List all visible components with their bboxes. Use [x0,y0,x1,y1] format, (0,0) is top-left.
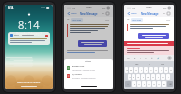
staticText: 10:32 [86,6,92,9]
button[interactable]: e [134,67,138,73]
staticText: 82% [102,7,106,9]
button[interactable]: h [151,74,155,80]
staticText: Spreadsheet · modified 2h ago [72,69,95,71]
button[interactable]: y [149,67,153,73]
staticText: Attach [85,60,92,63]
staticText: v [148,83,150,86]
button[interactable]: Format Aa [67,71,70,76]
button[interactable]: Format U [145,56,147,61]
button[interactable]: k [161,74,165,80]
button[interactable]: j [156,74,160,80]
staticText: k [162,76,164,79]
button[interactable]: w [129,67,133,73]
button[interactable]: Format I [80,71,81,76]
button[interactable]: p [169,67,173,73]
button[interactable]: Format ≡ [151,56,153,60]
button[interactable]: m [162,81,166,87]
staticText: ≡ [151,57,153,59]
button[interactable]: Back [127,11,138,16]
button[interactable]: c [142,81,146,87]
staticText: New Message [80,12,98,16]
button[interactable]: Camera [168,57,171,59]
button[interactable]: q [125,67,128,73]
button[interactable]: f [141,74,145,80]
button[interactable] [138,33,169,39]
staticText: z [134,83,135,86]
button[interactable]: MAIL [8,32,50,45]
button[interactable]: z [132,81,136,87]
button[interactable]: o [164,67,168,73]
button[interactable] [124,41,174,46]
button[interactable]: Format B [134,56,136,61]
staticText: y [150,69,152,72]
button[interactable]: We [160,63,165,66]
button[interactable]: v [147,81,151,87]
staticText: e [135,69,137,72]
staticText: Aa [67,72,70,75]
button[interactable]: r [79,77,83,83]
staticText: B [134,57,136,60]
button[interactable]: Back [67,11,78,16]
staticText: MAIL [14,34,20,37]
staticText: Inbox [71,12,77,15]
staticText: p [170,69,172,72]
button[interactable]: t [84,77,88,83]
staticText: Nora Chen [132,19,142,21]
staticText: m [163,83,165,86]
button[interactable]: r [139,67,143,73]
button[interactable]: I [148,63,151,66]
button[interactable]: s [132,74,135,80]
button[interactable]: u [154,67,158,73]
button[interactable]: ⌫ [167,81,173,87]
button[interactable]: Format 🔗 [157,56,160,60]
button[interactable]: q [64,77,68,83]
staticText: To: [127,18,130,21]
staticText: q [126,69,128,72]
button[interactable]: t [144,67,148,73]
button[interactable]: n [157,81,161,87]
staticText: s [133,76,134,79]
button[interactable]: w [69,77,73,83]
button[interactable]: a [128,74,131,80]
staticText: b [153,83,155,86]
button[interactable]: Format Aa [127,56,130,61]
staticText: w [130,69,132,72]
staticText: Q1 Report [72,73,82,76]
staticText: 8:14 [8,6,14,10]
staticText: Press home to unlock [17,81,41,84]
staticText: 82% [163,7,167,9]
button[interactable]: Format B [74,71,76,76]
staticText: Clear [105,19,110,21]
button[interactable]: e [74,77,78,83]
staticText: Document · modified yesterday [72,77,96,79]
button[interactable]: y [89,77,93,83]
button[interactable]: d [136,74,140,80]
button[interactable]: More options [162,11,171,16]
button[interactable]: u [94,77,98,83]
button[interactable]: The [134,63,140,66]
button[interactable]: x [137,81,141,87]
staticText: B [74,72,76,75]
button[interactable] [78,40,107,47]
button[interactable]: Budget Draft [64,64,113,72]
staticText: a [129,76,131,79]
button[interactable]: b [152,81,156,87]
button[interactable]: l [166,74,170,80]
staticText: I [140,57,141,60]
staticText: Clear [166,19,171,21]
staticText: l [168,76,169,79]
button[interactable]: More options [101,11,110,16]
button[interactable]: Format I [140,56,141,61]
button[interactable]: Q1 Report [64,72,113,80]
button[interactable]: ⇧ [125,81,131,87]
button[interactable]: g [146,74,150,80]
button[interactable]: i [159,67,163,73]
